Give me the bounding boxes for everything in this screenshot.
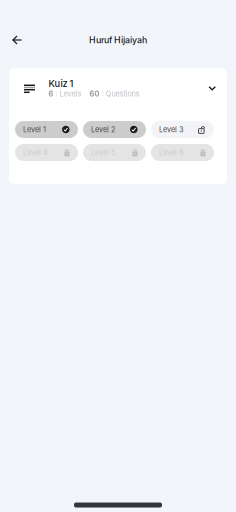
button[interactable]: Level 1 [15, 121, 78, 138]
staticText: : Questions [99, 89, 139, 98]
staticText: Level 3 [159, 125, 184, 134]
staticText: Level 4 [23, 148, 48, 157]
button[interactable]: Level 3 [151, 121, 214, 138]
staticText: : Levels [53, 89, 81, 98]
button[interactable]: Level 6 [151, 144, 214, 161]
staticText: Level 5 [91, 148, 115, 157]
staticText: Level 2 [91, 125, 115, 134]
staticText: 6 [48, 89, 53, 98]
staticText: Level 1 [23, 125, 46, 134]
button[interactable]: Back [6, 29, 28, 51]
button[interactable]: Level 2 [83, 121, 146, 138]
staticText: Huruf Hijaiyah [89, 35, 147, 45]
staticText: Kuiz 1 [48, 78, 73, 89]
button[interactable]: Level 5 [83, 144, 146, 161]
staticText: Level 6 [159, 148, 184, 157]
button[interactable]: Kuiz 1 [9, 68, 227, 121]
button[interactable]: Level 4 [15, 144, 78, 161]
staticText: 60 [81, 89, 99, 98]
